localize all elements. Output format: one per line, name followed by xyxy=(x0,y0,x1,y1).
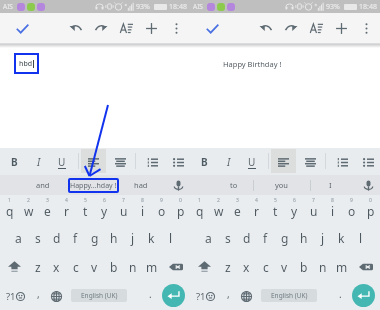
button[interactable]: k xyxy=(332,223,351,252)
button[interactable]: I xyxy=(312,175,348,195)
button[interactable]: Undo xyxy=(254,17,276,39)
button[interactable]: 7 xyxy=(304,195,323,223)
button[interactable]: 6 xyxy=(285,195,304,223)
button[interactable]: a xyxy=(199,223,218,252)
button[interactable]: s xyxy=(28,223,47,252)
button[interactable]: you xyxy=(262,175,300,195)
button[interactable]: Numbered list xyxy=(141,151,163,173)
button[interactable]: More options xyxy=(355,17,377,39)
button[interactable]: x xyxy=(237,252,256,281)
button[interactable]: Text format xyxy=(115,17,137,39)
button[interactable]: v xyxy=(275,252,294,281)
button[interactable]: x xyxy=(47,252,66,281)
button[interactable]: g xyxy=(85,223,104,252)
button[interactable]: 6 xyxy=(95,195,114,223)
button[interactable]: l xyxy=(351,223,370,252)
button[interactable]: Redo xyxy=(280,17,302,39)
button[interactable]: . xyxy=(329,283,351,309)
button[interactable]: 2 xyxy=(209,195,228,223)
button[interactable]: g xyxy=(275,223,294,252)
button[interactable]: 4 xyxy=(57,195,76,223)
button[interactable]: Underline xyxy=(51,151,73,173)
button[interactable]: j xyxy=(123,223,142,252)
button[interactable]: l xyxy=(161,223,180,252)
button[interactable]: Bulleted list xyxy=(167,151,189,173)
button[interactable]: Done xyxy=(11,17,33,39)
button[interactable]: Shift xyxy=(0,252,28,281)
button[interactable]: b xyxy=(294,252,313,281)
button[interactable]: 5 xyxy=(76,195,95,223)
button[interactable]: 1 xyxy=(190,195,209,223)
button[interactable]: h xyxy=(104,223,123,252)
button[interactable]: Italic xyxy=(218,151,240,173)
button[interactable]: f xyxy=(66,223,85,252)
button[interactable]: v xyxy=(85,252,104,281)
button[interactable]: , xyxy=(26,283,50,309)
button[interactable]: 3 xyxy=(228,195,247,223)
button[interactable]: 2 xyxy=(19,195,38,223)
button[interactable]: Bold xyxy=(3,151,25,173)
button[interactable]: Symbols xyxy=(2,283,29,309)
button[interactable]: Enter xyxy=(162,284,185,307)
button[interactable]: Numbered list xyxy=(331,151,353,173)
button[interactable]: a xyxy=(9,223,28,252)
button[interactable]: . xyxy=(139,283,161,309)
button[interactable]: f xyxy=(256,223,275,252)
button[interactable]: Italic xyxy=(28,151,50,173)
button[interactable]: Align left xyxy=(82,151,104,173)
button[interactable]: Align center xyxy=(109,151,131,173)
button[interactable]: More options xyxy=(165,17,187,39)
button[interactable]: 0 xyxy=(361,195,380,223)
button[interactable]: b xyxy=(104,252,123,281)
button[interactable]: m xyxy=(142,252,161,281)
button[interactable]: Backspace xyxy=(161,252,190,281)
button[interactable]: Align left xyxy=(272,151,294,173)
button[interactable]: , xyxy=(216,283,240,309)
button[interactable]: Space xyxy=(71,289,127,302)
button[interactable]: Voice input xyxy=(357,175,379,195)
button[interactable]: 5 xyxy=(266,195,285,223)
button[interactable]: 9 xyxy=(152,195,171,223)
button[interactable]: z xyxy=(218,252,237,281)
button[interactable]: 4 xyxy=(247,195,266,223)
button[interactable]: 1 xyxy=(0,195,19,223)
button[interactable]: Done xyxy=(201,17,223,39)
button[interactable]: Underline xyxy=(241,151,263,173)
button[interactable]: 8 xyxy=(133,195,152,223)
button[interactable]: Bulleted list xyxy=(357,151,379,173)
button[interactable]: Shift xyxy=(190,252,218,281)
button[interactable]: Add xyxy=(330,17,352,39)
button[interactable]: Undo xyxy=(64,17,86,39)
button[interactable]: Space xyxy=(261,289,317,302)
button[interactable]: Enter xyxy=(352,284,375,307)
button[interactable]: z xyxy=(28,252,47,281)
button[interactable]: Add xyxy=(140,17,162,39)
button[interactable]: Change language xyxy=(235,283,257,309)
button[interactable]: n xyxy=(313,252,332,281)
button[interactable]: n xyxy=(123,252,142,281)
button[interactable]: j xyxy=(313,223,332,252)
button[interactable]: 0 xyxy=(171,195,190,223)
button[interactable]: s xyxy=(218,223,237,252)
button[interactable]: 8 xyxy=(323,195,342,223)
button[interactable]: d xyxy=(237,223,256,252)
button[interactable]: m xyxy=(332,252,351,281)
button[interactable]: Bold xyxy=(193,151,215,173)
button[interactable]: Backspace xyxy=(351,252,380,281)
button[interactable]: and xyxy=(24,175,62,195)
button[interactable]: Text format xyxy=(305,17,327,39)
button[interactable]: Symbols xyxy=(192,283,219,309)
button[interactable]: Redo xyxy=(90,17,112,39)
button[interactable]: Voice input xyxy=(167,175,189,195)
button[interactable]: had xyxy=(122,175,160,195)
button[interactable]: 3 xyxy=(38,195,57,223)
button[interactable]: c xyxy=(256,252,275,281)
button[interactable]: d xyxy=(47,223,66,252)
button[interactable]: Align center xyxy=(299,151,321,173)
button[interactable]: c xyxy=(66,252,85,281)
button[interactable]: 9 xyxy=(342,195,361,223)
button[interactable]: to xyxy=(215,175,253,195)
button[interactable]: k xyxy=(142,223,161,252)
button[interactable]: h xyxy=(294,223,313,252)
button[interactable]: Change language xyxy=(45,283,67,309)
